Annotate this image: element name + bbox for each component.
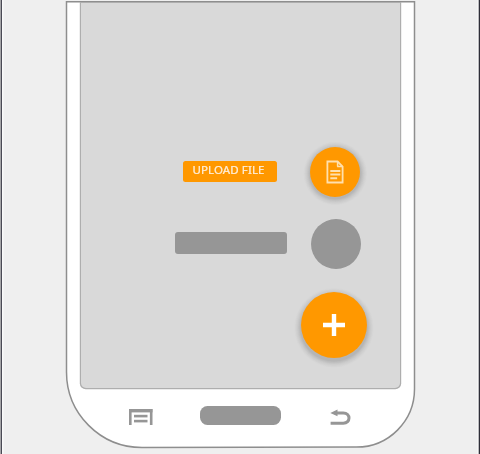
button[interactable]: [183, 161, 277, 182]
button[interactable]: Menu: [118, 398, 164, 436]
button[interactable]: Home: [200, 406, 281, 425]
button[interactable]: Open document: [310, 147, 360, 197]
button[interactable]: Back: [318, 398, 364, 436]
button[interactable]: Avatar placeholder: [311, 219, 361, 269]
button[interactable]: Add: [301, 292, 367, 358]
